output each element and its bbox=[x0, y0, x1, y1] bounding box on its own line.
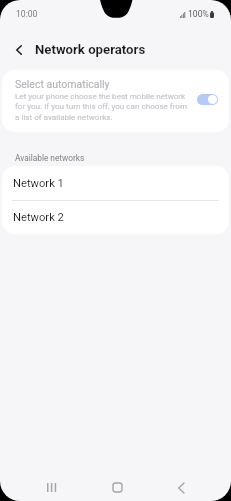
staticText: Network 2 bbox=[13, 211, 64, 224]
button[interactable]: Network 2 bbox=[2, 201, 229, 234]
button[interactable]: Select automatically bbox=[2, 70, 229, 132]
staticText: Network operators bbox=[35, 42, 146, 57]
staticText: Let your phone choose the best mobile ne… bbox=[15, 91, 191, 122]
button[interactable]: Select automatically bbox=[197, 94, 218, 105]
staticText: Available networks bbox=[15, 153, 85, 163]
staticText: Select automatically bbox=[15, 78, 110, 90]
staticText: Network 1 bbox=[13, 177, 64, 190]
button[interactable]: Network 1 bbox=[2, 166, 229, 200]
staticText: 10:00 bbox=[16, 9, 38, 19]
button[interactable]: Back bbox=[166, 473, 196, 501]
button[interactable]: Back bbox=[5, 36, 33, 64]
button[interactable]: Home bbox=[102, 472, 132, 501]
button[interactable]: Recent apps bbox=[37, 472, 67, 501]
staticText: 100% bbox=[188, 9, 209, 19]
